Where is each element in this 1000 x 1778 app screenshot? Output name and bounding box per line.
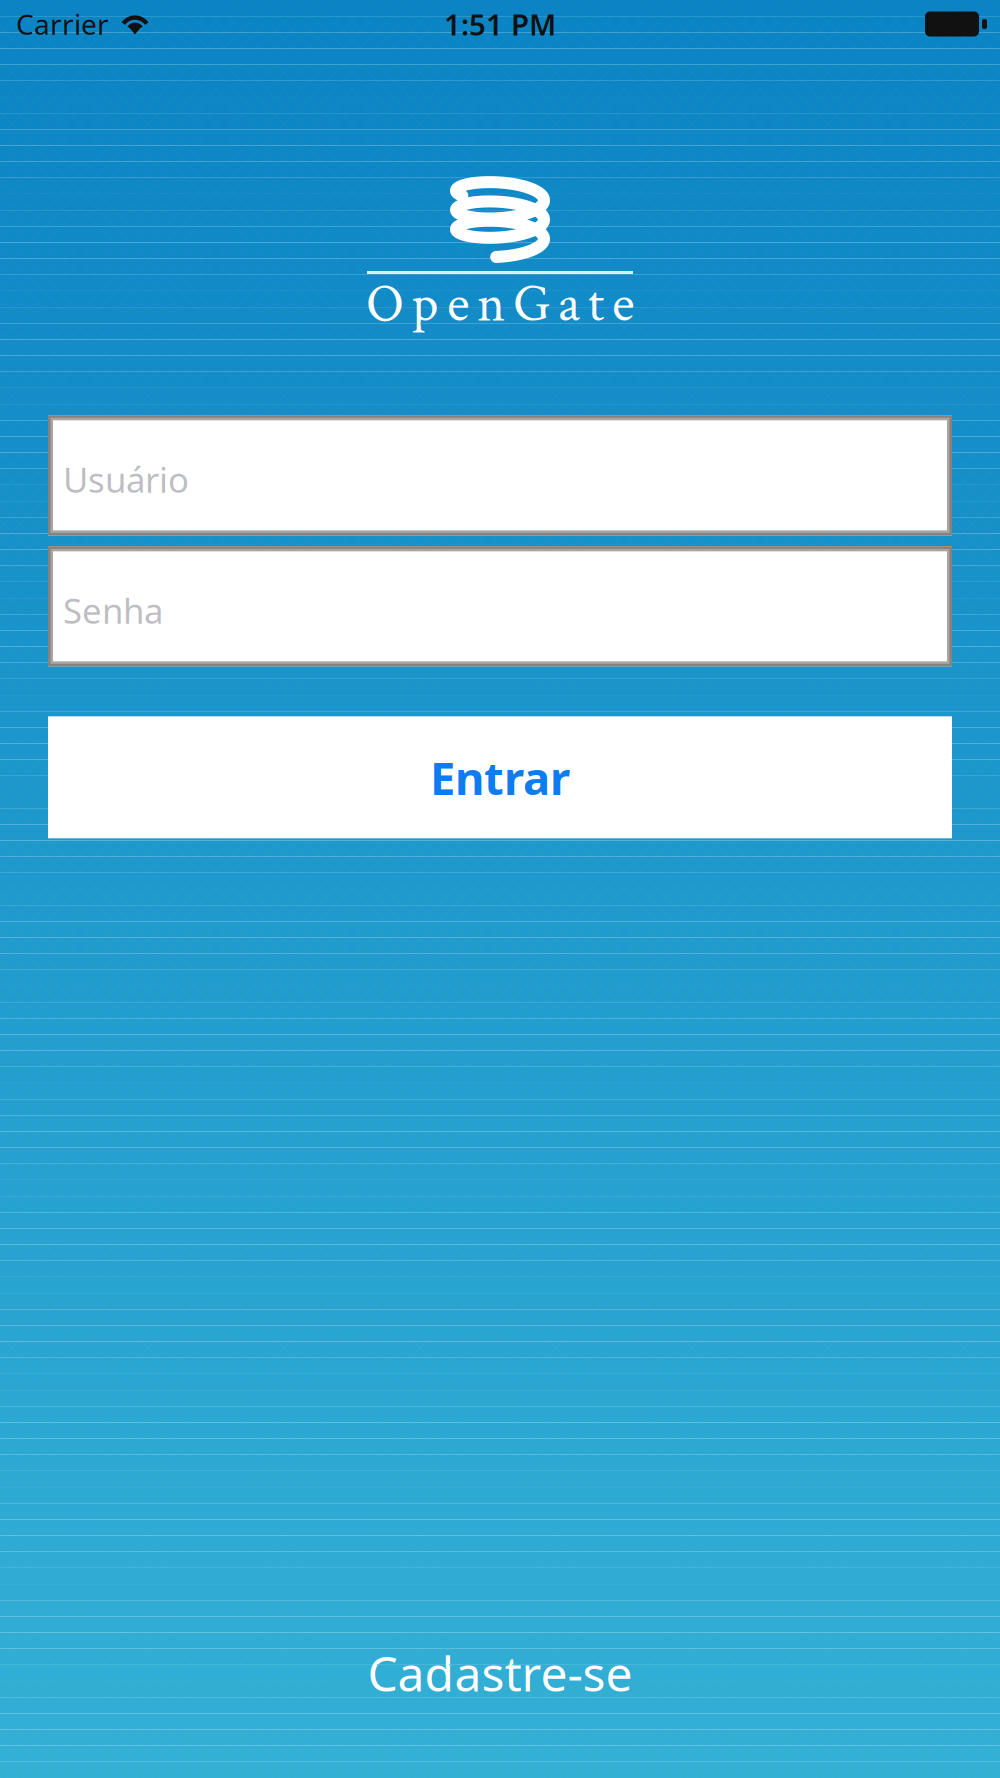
- button[interactable]: Usuário: [48, 415, 952, 535]
- staticText: Carrier: [16, 5, 109, 43]
- staticText: 1:51 PM: [444, 4, 556, 43]
- staticText: OpenGate: [366, 270, 634, 339]
- button[interactable]: Entrar: [48, 716, 952, 838]
- staticText: Senha: [63, 587, 163, 633]
- staticText: Usuário: [63, 456, 189, 502]
- staticText: Entrar: [430, 747, 570, 807]
- button[interactable]: Senha: [48, 546, 952, 666]
- staticText: Cadastre-se: [367, 1641, 632, 1705]
- button[interactable]: Cadastre-se: [0, 1633, 1000, 1713]
